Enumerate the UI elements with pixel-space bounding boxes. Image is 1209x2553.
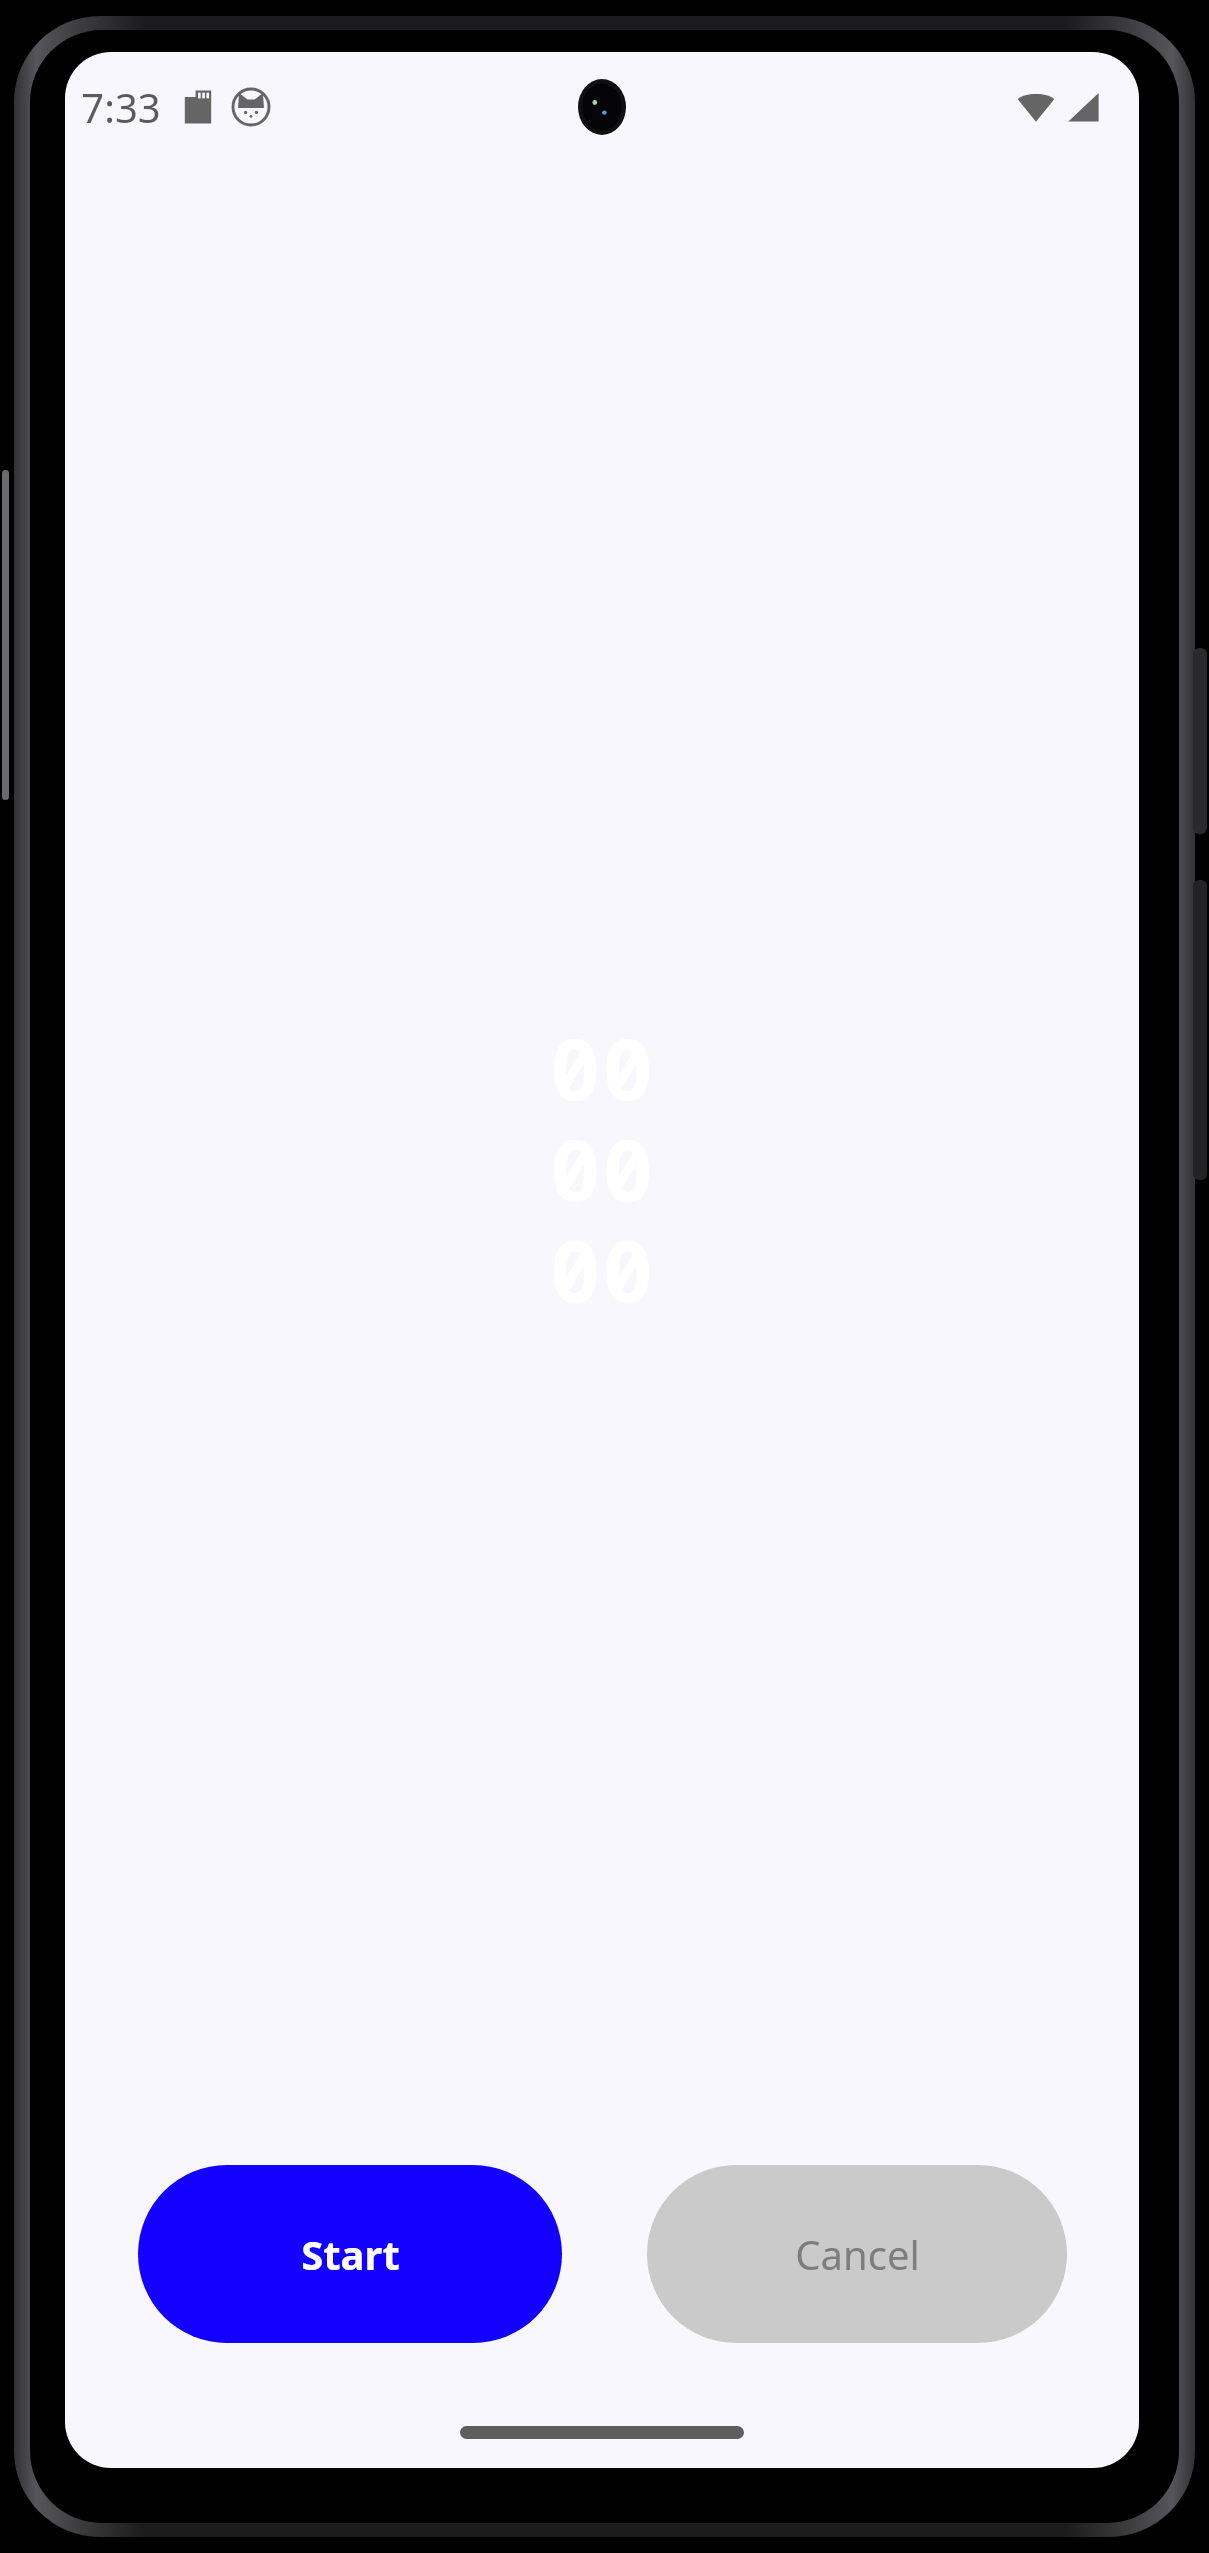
staticText: Start [301,2227,400,2281]
staticText: 00 [550,1010,655,1111]
button[interactable]: Start [138,2165,562,2343]
staticText: Cancel [795,2227,920,2281]
staticText: 00 [550,1212,655,1313]
staticText: 7:33 [81,80,161,134]
staticText: 00 [550,1111,655,1212]
button[interactable]: Cancel [647,2165,1067,2343]
